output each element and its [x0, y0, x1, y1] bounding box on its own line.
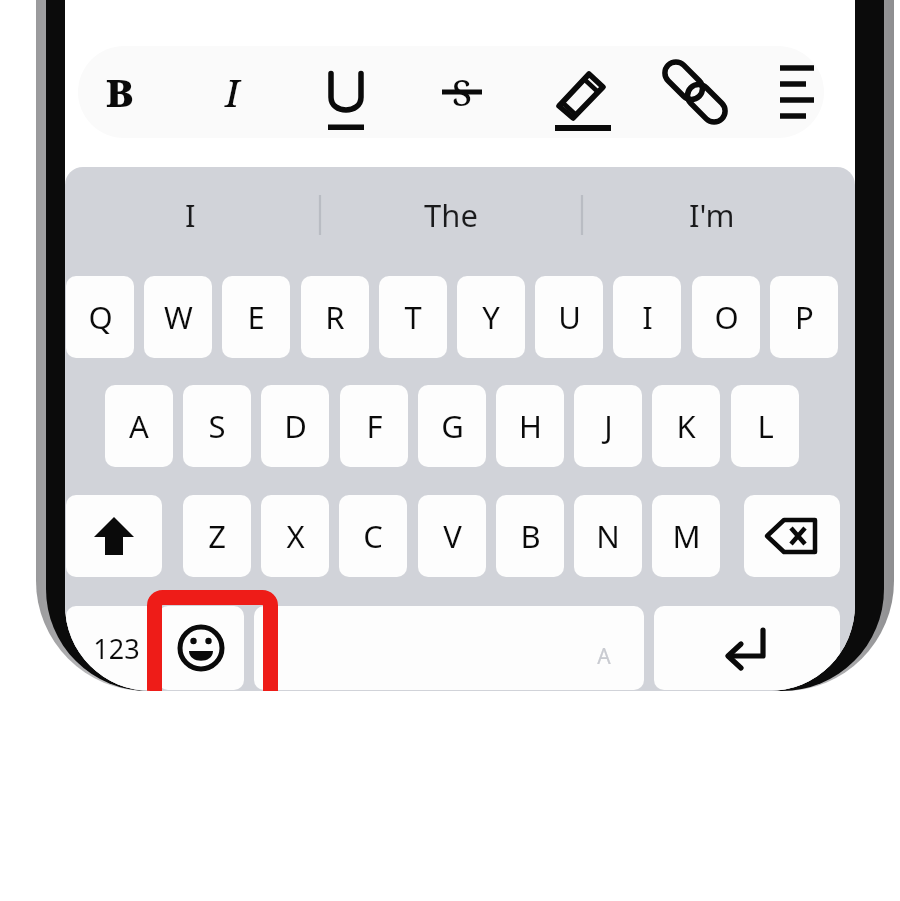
staticText: E: [247, 296, 265, 338]
staticText: U: [558, 296, 581, 338]
staticText: W: [164, 296, 193, 338]
button[interactable]: [770, 276, 838, 358]
button[interactable]: [652, 385, 720, 467]
button[interactable]: [613, 276, 681, 358]
staticText: T: [404, 296, 422, 338]
staticText: S: [208, 405, 226, 447]
button[interactable]: Highlight: [545, 46, 621, 138]
button[interactable]: Shift: [66, 495, 162, 577]
staticText: The: [424, 194, 478, 236]
button[interactable]: I: [194, 46, 270, 138]
staticText: N: [596, 515, 620, 557]
button[interactable]: [496, 385, 564, 467]
button[interactable]: I'm: [602, 167, 822, 263]
button[interactable]: [144, 276, 212, 358]
button[interactable]: [457, 276, 525, 358]
staticText: Z: [208, 515, 226, 557]
staticText: H: [519, 405, 542, 447]
staticText: F: [366, 405, 383, 447]
button[interactable]: [496, 495, 564, 577]
button[interactable]: Return: [654, 606, 840, 690]
button[interactable]: [105, 385, 173, 467]
staticText: X: [286, 515, 305, 557]
staticText: P: [795, 296, 814, 338]
staticText: O: [714, 296, 739, 338]
staticText: J: [604, 405, 613, 447]
button[interactable]: [254, 606, 644, 690]
button[interactable]: [183, 495, 251, 577]
button[interactable]: Backspace: [744, 495, 840, 577]
button[interactable]: [261, 385, 329, 467]
button[interactable]: [66, 276, 134, 358]
staticText: I'm: [689, 194, 735, 236]
button[interactable]: [652, 495, 720, 577]
button[interactable]: [261, 495, 329, 577]
button[interactable]: [574, 495, 642, 577]
staticText: L: [757, 405, 774, 447]
button[interactable]: Underline: [308, 46, 384, 138]
button[interactable]: [535, 276, 603, 358]
button[interactable]: [379, 276, 447, 358]
button[interactable]: [339, 495, 407, 577]
staticText: I: [185, 194, 196, 236]
staticText: S: [452, 68, 472, 117]
staticText: M: [672, 515, 701, 557]
staticText: D: [284, 405, 307, 447]
button[interactable]: [66, 606, 166, 690]
staticText: B: [520, 515, 541, 557]
staticText: K: [676, 405, 696, 447]
button[interactable]: Alignment: [767, 46, 827, 138]
button[interactable]: [340, 385, 408, 467]
button[interactable]: The: [341, 167, 561, 263]
staticText: I: [642, 296, 653, 338]
staticText: 123: [93, 630, 140, 667]
staticText: R: [325, 296, 345, 338]
staticText: G: [441, 405, 464, 447]
button[interactable]: [222, 276, 290, 358]
staticText: B: [106, 66, 134, 118]
button[interactable]: [418, 385, 486, 467]
staticText: Y: [482, 296, 500, 338]
button[interactable]: [183, 385, 251, 467]
staticText: A: [129, 405, 149, 447]
button[interactable]: B: [82, 46, 158, 138]
staticText: A: [597, 642, 611, 671]
button[interactable]: Emoji: [158, 606, 244, 690]
button[interactable]: Strikethrough: [424, 46, 500, 138]
button[interactable]: [731, 385, 799, 467]
button[interactable]: [574, 385, 642, 467]
button[interactable]: [301, 276, 369, 358]
button[interactable]: [692, 276, 760, 358]
button[interactable]: I: [80, 167, 300, 263]
staticText: V: [443, 515, 462, 557]
staticText: Q: [88, 296, 113, 338]
button[interactable]: [418, 495, 486, 577]
button[interactable]: Insert link: [657, 46, 733, 138]
staticText: C: [363, 515, 383, 557]
staticText: I: [225, 66, 240, 118]
